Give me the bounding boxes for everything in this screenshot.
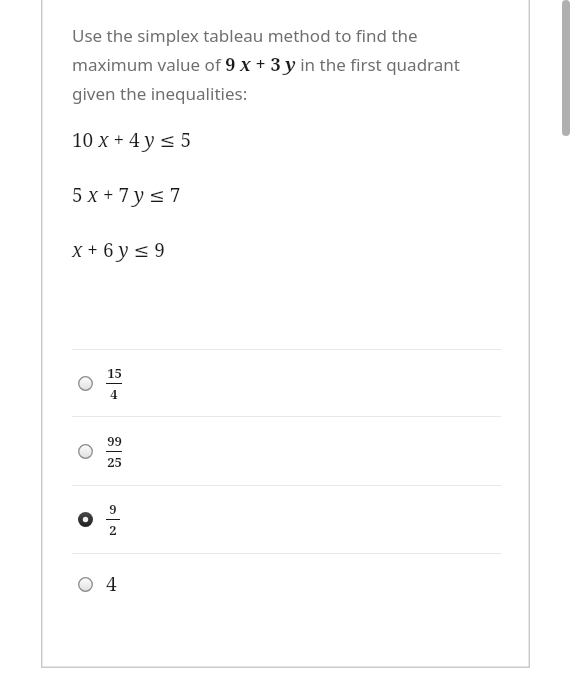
button[interactable]: Selected option (72, 486, 501, 553)
staticText: 2 (109, 521, 117, 539)
other: Selected option (78, 512, 93, 527)
other: Unselected option (78, 577, 93, 592)
staticText: 25 (107, 453, 122, 471)
staticText: 4 (106, 571, 117, 597)
staticText: 4 (110, 385, 118, 403)
staticText: x + 6 y ≤ 9 (72, 237, 165, 263)
staticText: 15 (107, 364, 122, 382)
staticText: 99 (107, 432, 122, 450)
button[interactable]: Unselected option (72, 417, 501, 485)
staticText: 9 (109, 500, 117, 518)
button[interactable]: Unselected option (72, 554, 501, 614)
staticText: Use the simplex tableau method to find t… (72, 24, 501, 105)
other: Unselected option (78, 444, 93, 459)
staticText: 10 x + 4 y ≤ 5 (72, 127, 192, 153)
button[interactable]: Unselected option (72, 350, 501, 416)
other: Unselected option (78, 376, 93, 391)
staticText: 5 x + 7 y ≤ 7 (72, 182, 181, 208)
